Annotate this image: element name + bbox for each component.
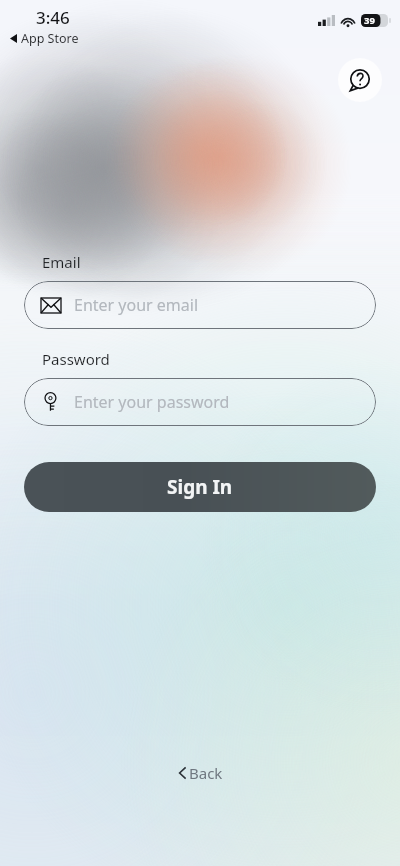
button[interactable]: Help	[338, 58, 382, 102]
button[interactable]: Back	[168, 758, 233, 788]
staticText: 3:46	[36, 6, 70, 29]
staticText: Email	[42, 252, 81, 272]
staticText: Enter your email	[74, 294, 199, 316]
staticText: Password	[42, 349, 110, 369]
staticText: Enter your password	[74, 391, 230, 413]
staticText: 39	[364, 14, 375, 27]
staticText: Sign In	[167, 474, 233, 500]
staticText: App Store	[21, 30, 79, 47]
button[interactable]: Enter your email	[24, 281, 376, 329]
staticText: Back	[189, 763, 223, 783]
button[interactable]: Sign In	[24, 462, 376, 512]
button[interactable]: Enter your password	[24, 378, 376, 426]
